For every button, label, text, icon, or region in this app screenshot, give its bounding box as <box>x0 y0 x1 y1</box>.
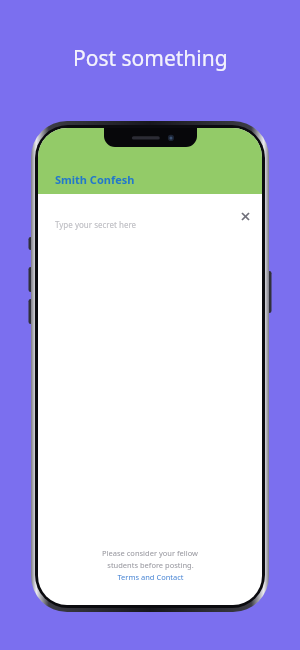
staticText: Terms and Contact <box>117 572 184 582</box>
staticText: Type your secret here <box>55 219 137 230</box>
staticText: students before posting. <box>107 560 194 570</box>
button[interactable]: Close <box>236 207 254 225</box>
staticText: Smith Confesh <box>55 172 135 187</box>
staticText: Please consider your fellow <box>102 548 198 558</box>
staticText: Post something <box>73 44 228 73</box>
button[interactable]: Terms and Contact <box>117 572 184 582</box>
